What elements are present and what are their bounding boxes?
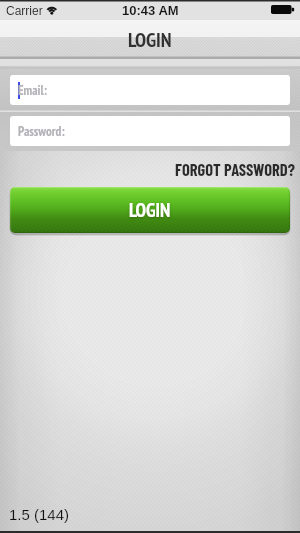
button[interactable]: Email: — [10, 75, 290, 105]
button[interactable]: Password: — [10, 116, 290, 146]
staticText: Password: — [18, 123, 65, 140]
staticText: 1.5 (144) — [9, 506, 70, 523]
staticText: 10:43 AM — [122, 3, 179, 18]
staticText: LOGIN — [129, 198, 171, 223]
staticText: LOGIN — [128, 27, 172, 53]
button[interactable]: LOGIN — [10, 187, 290, 233]
other: Battery full — [271, 5, 295, 14]
staticText: FORGOT PASSWORD? — [175, 159, 295, 179]
button[interactable]: FORGOT PASSWORD? — [0, 159, 300, 179]
other: Wi-Fi signal — [46, 3, 58, 14]
staticText: Carrier — [6, 4, 43, 17]
staticText: Email: — [18, 82, 47, 99]
